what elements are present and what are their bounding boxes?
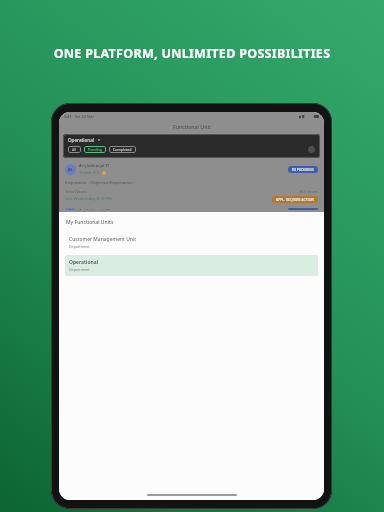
button[interactable]: AS [59, 161, 324, 177]
button[interactable]: Customer Management Unit [65, 232, 318, 253]
button[interactable]: Operational [65, 255, 318, 276]
staticText: Operational [68, 137, 95, 143]
staticText: Pending [88, 147, 102, 152]
staticText: 96.5 Score [299, 189, 318, 194]
staticText: Tedad: 414 [79, 170, 100, 175]
staticText: Arij Jabbarjal IT [79, 163, 110, 169]
button[interactable]: AJ [59, 206, 324, 212]
staticText: Functional Unit [173, 123, 211, 130]
staticText: Completed [113, 147, 132, 152]
staticText: Customer Management Unit [69, 236, 136, 243]
staticText: Last Wednesday 8:15 PM [65, 196, 112, 201]
staticText: ONE PLATFORM, UNLIMITED POSSIBILITIES [0, 45, 384, 62]
staticText: Inspiration - Objective/Expectation [65, 180, 133, 186]
staticText: AS [68, 167, 73, 172]
staticText: Department [69, 267, 90, 272]
button[interactable]: Operational [68, 137, 101, 143]
staticText: Arij Jabbarial IT [79, 208, 110, 210]
button[interactable]: Settings [308, 146, 315, 153]
button[interactable]: Pending [84, 146, 106, 153]
staticText: Department [69, 244, 90, 249]
staticText: All [72, 147, 77, 152]
staticText: Operational [69, 259, 99, 266]
staticText: My Functional Units [66, 219, 114, 226]
staticText: IN PROGRESS [292, 167, 314, 172]
button[interactable]: Completed [109, 146, 136, 153]
staticText: AJ [69, 208, 73, 210]
staticText: Time Based [65, 189, 87, 194]
staticText: APPL. REQUIRE ACTION [276, 197, 314, 202]
button[interactable]: All [68, 146, 81, 153]
staticText: Sat 24 Mar [75, 114, 95, 119]
staticText: 9:41 [64, 114, 72, 119]
